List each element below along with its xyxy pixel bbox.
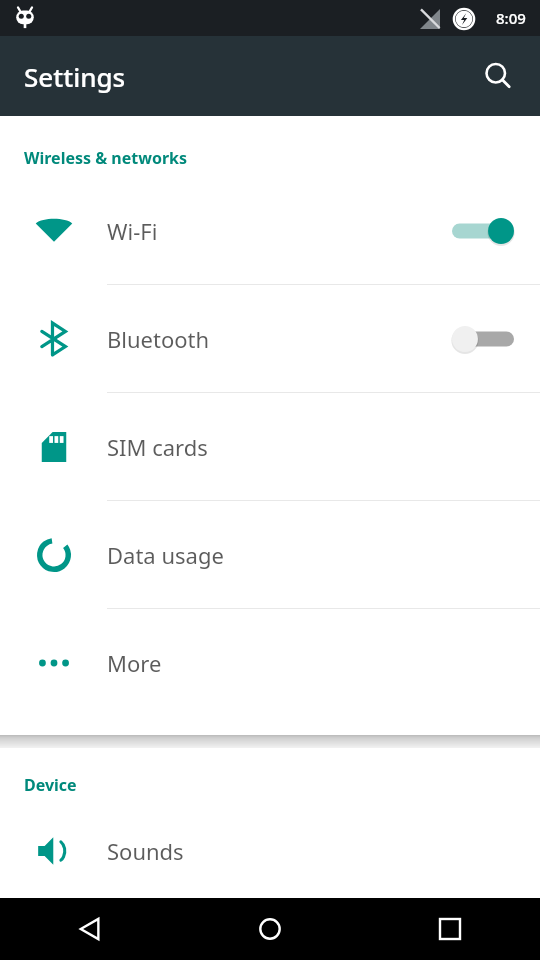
staticText: More <box>107 648 540 678</box>
button[interactable]: Bluetooth off <box>452 321 514 357</box>
staticText: Bluetooth <box>107 324 452 354</box>
button[interactable]: Bluetooth <box>0 285 540 393</box>
staticText: Wi-Fi <box>107 216 452 246</box>
staticText: Settings <box>24 59 126 94</box>
staticText: Device <box>24 774 77 796</box>
button[interactable]: Back <box>0 898 180 960</box>
button[interactable]: SIM cards <box>0 393 540 501</box>
button[interactable]: Data usage <box>0 501 540 609</box>
staticText: SIM cards <box>107 432 540 462</box>
button[interactable]: Search <box>470 48 526 104</box>
staticText: Data usage <box>107 540 540 570</box>
button[interactable]: Recent apps <box>360 898 540 960</box>
button[interactable]: More <box>0 609 540 717</box>
button[interactable]: Home <box>180 898 360 960</box>
button[interactable]: Wi-Fi <box>0 177 540 285</box>
button[interactable]: Sounds <box>0 804 540 898</box>
button[interactable]: Wi-Fi on <box>452 213 514 249</box>
staticText: Sounds <box>107 836 540 866</box>
staticText: Wireless & networks <box>24 147 188 169</box>
staticText: 8:09 <box>496 8 526 28</box>
